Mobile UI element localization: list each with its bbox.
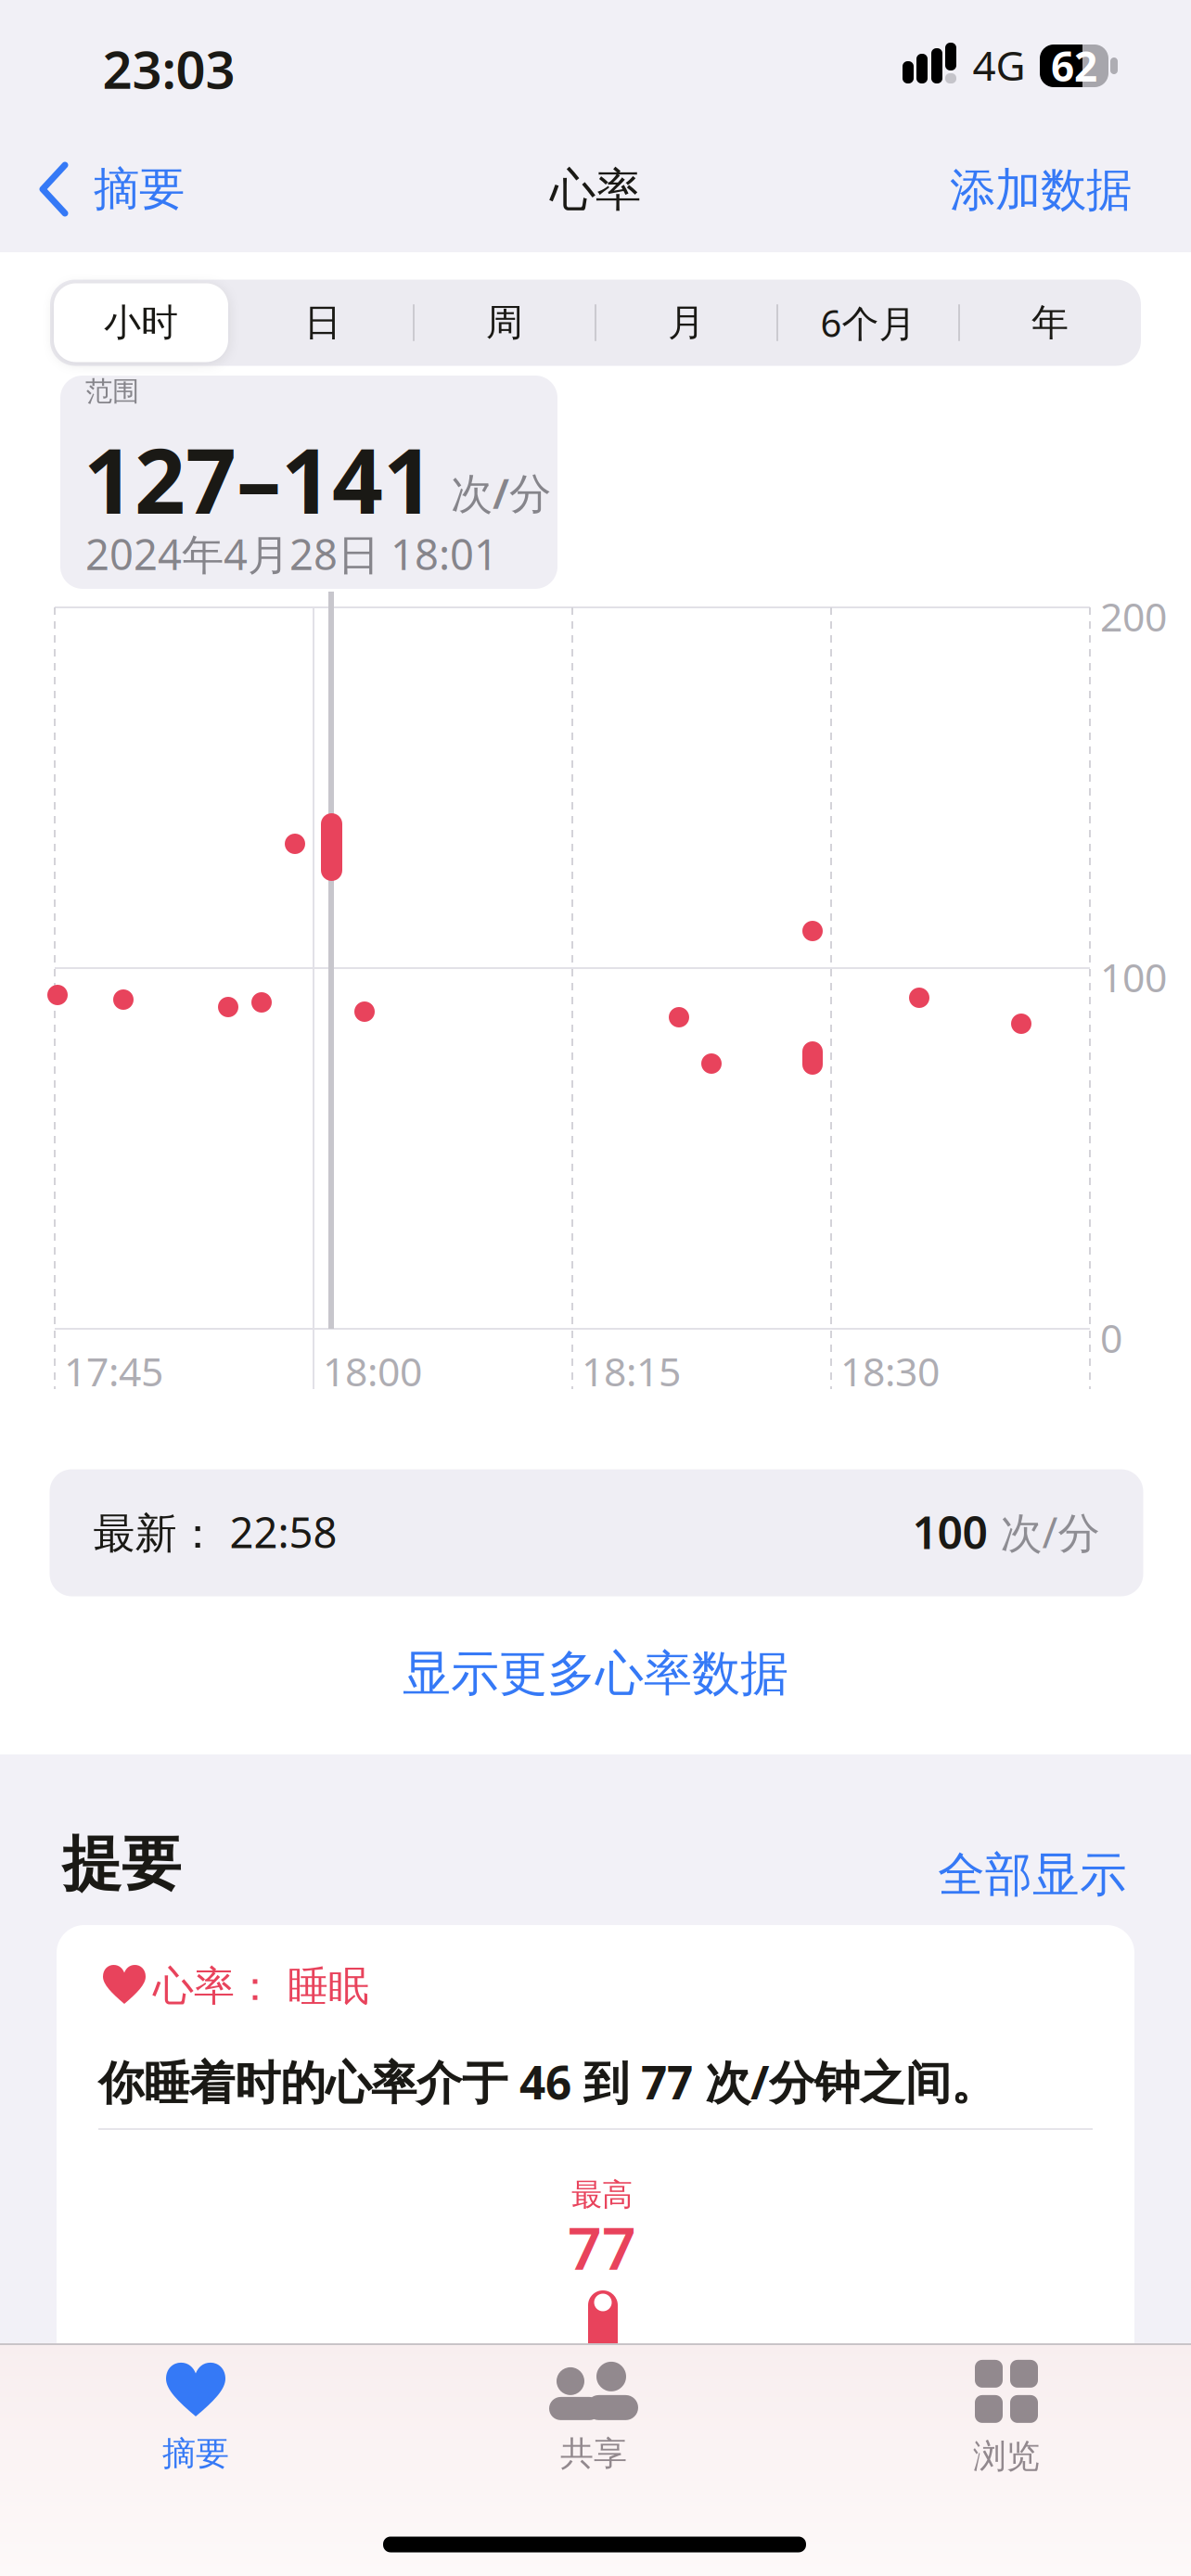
staticText: 100 [912,1502,987,1561]
staticText: 摘要 [94,161,185,217]
staticText: 6个月 [820,298,916,347]
staticText: 4G [973,38,1025,92]
button[interactable]: 日 [235,281,411,364]
staticText: 心率 [550,162,641,218]
button[interactable]: 年 [962,281,1138,364]
staticText: 77 [568,2207,636,2286]
staticText: 全部显示 [938,1846,1127,1904]
staticText: 2024年4月28日 18:01 [85,526,498,582]
button[interactable]: 摘要 [84,2353,307,2483]
button[interactable]: 摘要 [40,161,185,217]
staticText: 100 [1100,950,1167,1003]
button[interactable]: 共享 [482,2353,705,2483]
staticText: 提要 [62,1828,181,1901]
staticText: 0 [1100,1311,1122,1364]
staticText: 次/分 [451,465,551,520]
staticText: 200 [1100,590,1167,642]
staticText: 浏览 [973,2436,1040,2477]
staticText: 添加数据 [950,162,1132,218]
staticText: 月 [668,300,705,345]
button[interactable]: 6个月 [780,281,956,364]
staticText: 最新： 22:58 [93,1504,337,1560]
staticText: 共享 [560,2433,627,2474]
staticText: 18:00 [323,1345,422,1397]
staticText: 摘要 [162,2433,229,2474]
staticText: 次/分 [987,1504,1100,1560]
staticText: 心率： 睡眠 [153,1961,369,2011]
button[interactable]: 小时 [54,283,228,362]
button[interactable]: 添加数据 [950,162,1132,218]
button[interactable]: 浏览 [895,2353,1118,2483]
button[interactable]: 月 [598,281,775,364]
staticText: 周 [486,300,523,345]
button[interactable]: 全部显示 [938,1846,1127,1904]
staticText: 62 [1051,39,1097,93]
staticText: 18:15 [582,1345,681,1397]
staticText: 17:45 [64,1345,163,1397]
staticText: 小时 [104,300,178,345]
button[interactable]: 周 [416,281,593,364]
staticText: 显示更多心率数据 [403,1644,788,1703]
button[interactable]: 显示更多心率数据 [403,1644,788,1703]
staticText: 最高 [571,2176,633,2214]
staticText: 127–141 [83,420,434,538]
staticText: 年 [1031,300,1069,345]
button[interactable] [57,1925,1134,2374]
staticText: 18:30 [840,1345,940,1397]
staticText: 23:03 [102,34,235,103]
staticText: 范围 [85,375,139,408]
staticText: 你睡着时的心率介于 46 到 77 次/分钟之间。 [98,2051,996,2112]
staticText: 日 [304,300,341,345]
